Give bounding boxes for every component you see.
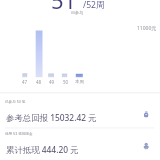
staticText: 11000元 bbox=[137, 25, 157, 32]
staticText: 48 bbox=[36, 79, 42, 85]
staticText: 累计抵现 444.20 元 bbox=[6, 144, 79, 155]
staticText: /52周 bbox=[83, 0, 105, 11]
staticText: 参考总回报 15032.42 元 bbox=[6, 112, 97, 123]
staticText: 47 bbox=[22, 79, 28, 85]
staticText: 已参与 53 笔 bbox=[5, 99, 26, 104]
staticText: 使用 53 笔抵现金 bbox=[5, 131, 33, 136]
button[interactable]: 已参与 53 笔 bbox=[0, 96, 160, 127]
button[interactable]: 使用 53 笔抵现金 bbox=[0, 128, 160, 159]
button[interactable]: 查看详情 bbox=[140, 141, 153, 154]
staticText: 49 bbox=[49, 79, 55, 85]
staticText: 50 bbox=[63, 79, 69, 85]
staticText: 已参与 bbox=[71, 10, 83, 15]
button[interactable]: 查看详情 bbox=[140, 109, 153, 122]
staticText: 本周 bbox=[75, 79, 84, 85]
staticText: 51 bbox=[51, 0, 77, 15]
